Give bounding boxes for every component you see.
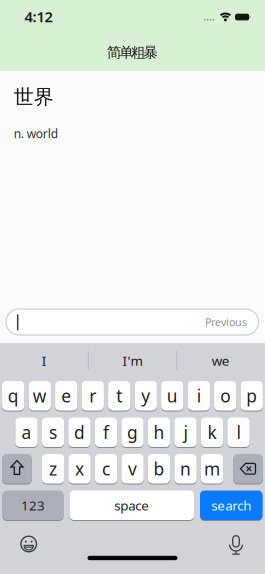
button[interactable]: d bbox=[68, 417, 91, 447]
staticText: n bbox=[180, 457, 191, 480]
staticText: g bbox=[127, 421, 138, 444]
button[interactable]: 123 bbox=[2, 490, 63, 520]
staticText: q bbox=[8, 384, 19, 407]
button[interactable]: s bbox=[42, 417, 64, 447]
staticText: y bbox=[141, 384, 150, 407]
button[interactable]: w bbox=[29, 381, 51, 410]
button[interactable]: r bbox=[82, 381, 104, 410]
button[interactable]: I'm bbox=[89, 345, 175, 375]
staticText: s bbox=[49, 421, 57, 444]
staticText: Previous bbox=[205, 315, 247, 329]
button[interactable]: search bbox=[200, 490, 262, 520]
staticText: o bbox=[220, 384, 230, 407]
button[interactable]: o bbox=[214, 381, 236, 410]
button[interactable]: Emoji bbox=[14, 529, 44, 559]
staticText: a bbox=[21, 421, 31, 444]
staticText: I bbox=[42, 352, 47, 369]
button[interactable]: m bbox=[201, 454, 223, 483]
button[interactable]: k bbox=[201, 417, 223, 447]
staticText: 世界 bbox=[14, 85, 54, 109]
button[interactable]: i bbox=[188, 381, 210, 410]
staticText: m bbox=[204, 457, 220, 480]
staticText: 4:12 bbox=[24, 7, 52, 26]
button[interactable]: u bbox=[161, 381, 183, 410]
button[interactable]: p bbox=[241, 381, 263, 410]
staticText: l bbox=[236, 421, 240, 444]
staticText: r bbox=[89, 384, 96, 407]
staticText: f bbox=[103, 421, 109, 444]
button[interactable]: l bbox=[227, 417, 250, 447]
button[interactable]: Delete bbox=[233, 454, 263, 483]
button[interactable]: n bbox=[174, 454, 197, 483]
staticText: p bbox=[246, 384, 257, 407]
staticText: z bbox=[49, 457, 57, 480]
button[interactable]: Dictation bbox=[221, 529, 251, 559]
button[interactable]: Answer field bbox=[6, 309, 258, 335]
button[interactable]: a bbox=[15, 417, 38, 447]
staticText: c bbox=[102, 457, 110, 480]
staticText: v bbox=[128, 457, 137, 480]
staticText: h bbox=[153, 421, 164, 444]
button[interactable]: e bbox=[55, 381, 77, 410]
button[interactable]: t bbox=[108, 381, 130, 410]
staticText: w bbox=[33, 384, 47, 407]
button[interactable]: we bbox=[178, 345, 264, 375]
button[interactable]: h bbox=[148, 417, 170, 447]
staticText: t bbox=[116, 384, 122, 407]
staticText: 简单粗暴 bbox=[107, 43, 158, 61]
staticText: e bbox=[61, 384, 71, 407]
button[interactable]: v bbox=[121, 454, 144, 483]
staticText: x bbox=[75, 457, 84, 480]
staticText: u bbox=[167, 384, 178, 407]
staticText: I'm bbox=[122, 352, 142, 369]
staticText: k bbox=[207, 421, 216, 444]
button[interactable]: Shift bbox=[2, 454, 32, 483]
button[interactable]: f bbox=[95, 417, 117, 447]
button[interactable]: c bbox=[95, 454, 117, 483]
button[interactable]: y bbox=[135, 381, 157, 410]
button[interactable]: space bbox=[69, 490, 194, 520]
staticText: search bbox=[211, 496, 251, 514]
staticText: space bbox=[114, 496, 149, 514]
button[interactable]: q bbox=[2, 381, 24, 410]
staticText: 123 bbox=[21, 496, 45, 514]
staticText: b bbox=[154, 457, 165, 480]
staticText: n. world bbox=[14, 125, 58, 141]
button[interactable]: b bbox=[148, 454, 170, 483]
button[interactable]: z bbox=[42, 454, 64, 483]
button[interactable]: j bbox=[174, 417, 197, 447]
staticText: j bbox=[183, 421, 187, 444]
button[interactable]: x bbox=[68, 454, 91, 483]
staticText: d bbox=[74, 421, 85, 444]
button[interactable]: g bbox=[121, 417, 144, 447]
staticText: i bbox=[197, 384, 201, 407]
staticText: we bbox=[212, 352, 230, 369]
button[interactable]: I bbox=[1, 345, 87, 375]
